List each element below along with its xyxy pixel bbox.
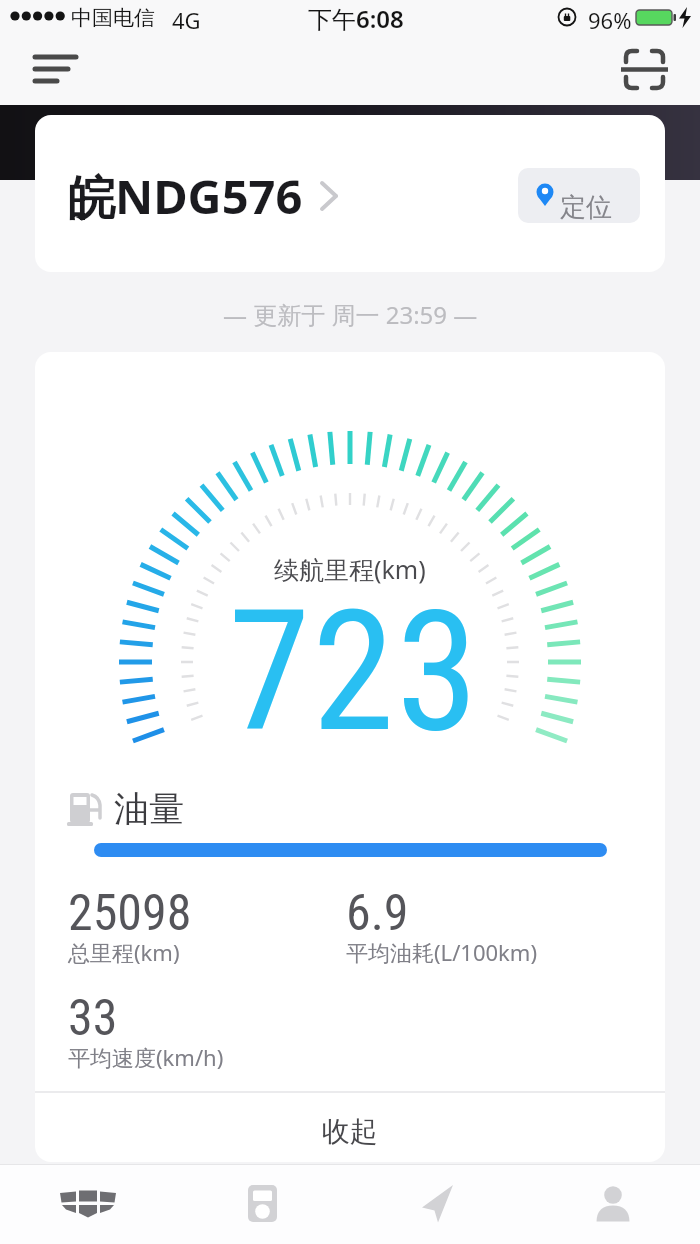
button[interactable] (613, 42, 673, 92)
button[interactable] (525, 1164, 700, 1244)
button[interactable]: 定位 (518, 168, 640, 223)
staticText: 723 (228, 574, 480, 770)
staticText: 收起 (322, 1114, 378, 1149)
button[interactable] (350, 1164, 525, 1244)
staticText: — 更新于 周一 23:59 — (223, 298, 478, 331)
staticText: 25098 (68, 884, 192, 943)
staticText: 油量 (114, 787, 184, 831)
button[interactable] (94, 843, 607, 857)
button[interactable]: 皖NDG576 (35, 115, 665, 272)
staticText: 定位 (560, 191, 612, 223)
staticText: 33 (68, 989, 118, 1048)
staticText: 96% (588, 5, 632, 35)
button[interactable] (175, 1164, 350, 1244)
button[interactable] (0, 1164, 175, 1244)
staticText: 4G (172, 5, 201, 35)
staticText: 皖NDG576 (68, 164, 303, 228)
staticText: 续航里程(km) (274, 552, 426, 586)
button[interactable] (25, 42, 85, 92)
button[interactable]: 收起 (35, 1100, 665, 1162)
staticText: 6.9 (346, 884, 409, 943)
staticText: 平均速度(km/h) (68, 1042, 224, 1072)
staticText: 下午6:08 (308, 2, 404, 35)
staticText: 中国电信 (71, 5, 155, 31)
staticText: 总里程(km) (68, 937, 180, 967)
staticText: 平均油耗(L/100km) (346, 937, 537, 967)
